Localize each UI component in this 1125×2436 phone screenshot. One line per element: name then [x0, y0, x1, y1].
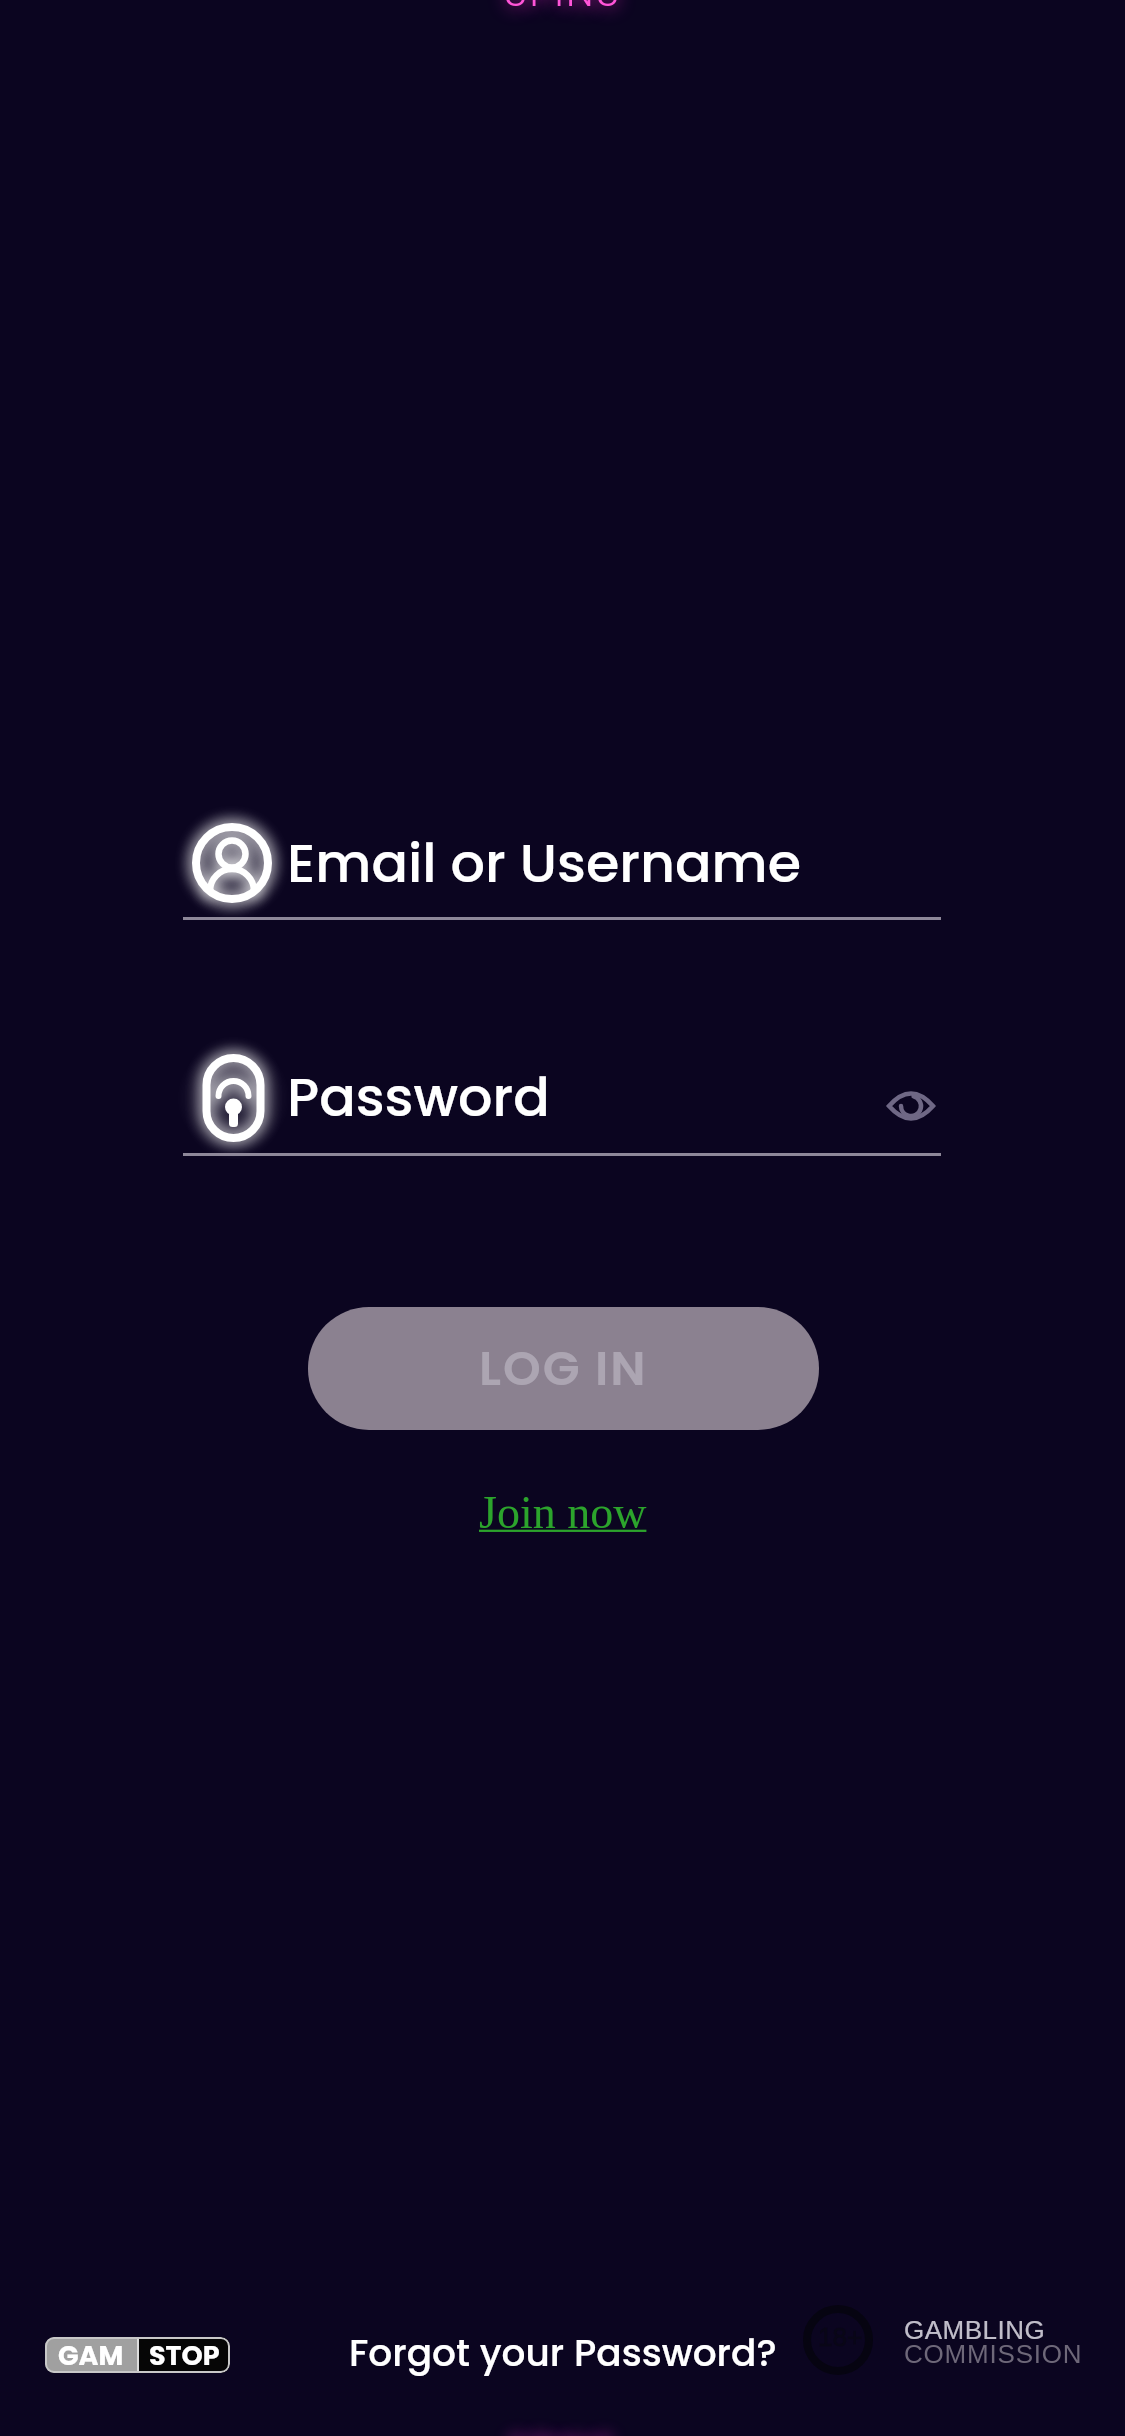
staticText: 18+: [818, 2322, 863, 2351]
button[interactable]: GAM: [45, 2337, 230, 2373]
button[interactable]: [183, 808, 941, 920]
button[interactable]: [183, 1045, 941, 1157]
button[interactable]: [887, 1086, 935, 1126]
staticText: COMMISSION: [904, 2339, 1083, 2368]
staticText: STOP: [149, 2337, 220, 2373]
button[interactable]: LOG IN: [308, 1307, 819, 1430]
staticText: GAM: [58, 2337, 124, 2373]
staticText: SPINS: [508, 2423, 618, 2436]
staticText: Email or Username: [287, 825, 802, 901]
staticText: Password: [287, 1059, 550, 1135]
button[interactable]: Forgot your Password?: [349, 2327, 777, 2380]
staticText: GAMBLING: [904, 2315, 1046, 2344]
staticText: LOG IN: [479, 1335, 648, 1402]
button[interactable]: Join now: [479, 1487, 647, 1538]
staticText: SPINS: [504, 0, 622, 20]
